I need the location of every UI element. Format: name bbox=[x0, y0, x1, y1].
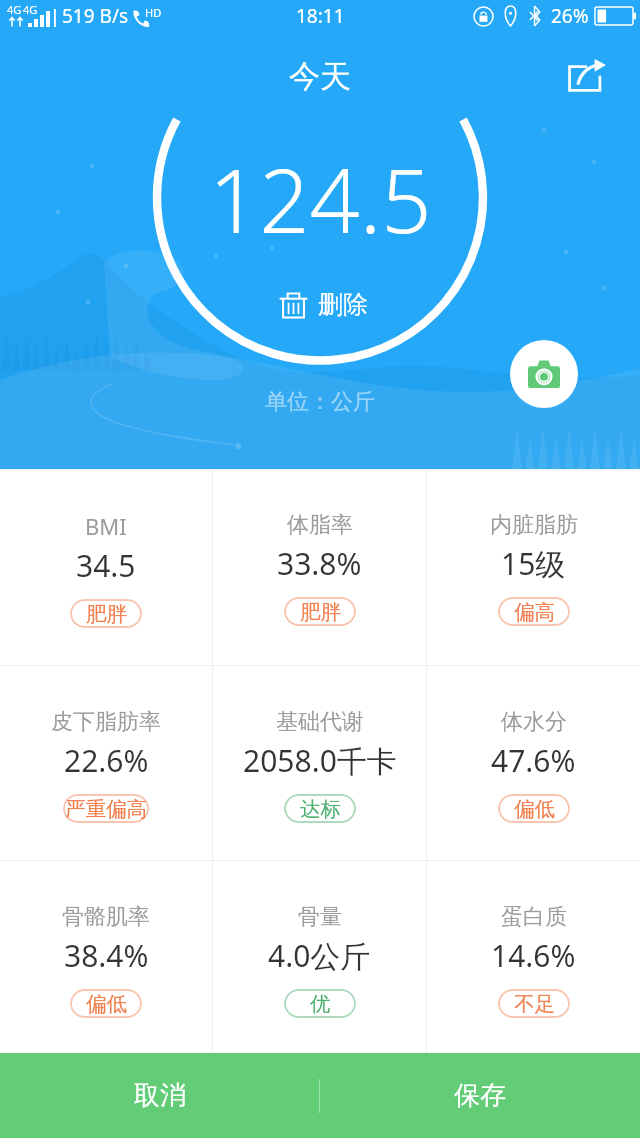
button[interactable]: 蛋白质 bbox=[427, 861, 640, 1053]
staticText: 优 bbox=[310, 991, 331, 1017]
staticText: 47.6% bbox=[491, 740, 576, 781]
staticText: 18:11 bbox=[296, 3, 345, 29]
staticText: 2058.0千卡 bbox=[243, 740, 397, 781]
staticText: 124.5 bbox=[209, 139, 432, 235]
staticText: 26% bbox=[551, 3, 589, 29]
staticText: 单位：公斤 bbox=[265, 388, 375, 416]
staticText: 38.4% bbox=[64, 935, 149, 976]
button[interactable]: 体水分 bbox=[427, 666, 640, 860]
staticText: 15级 bbox=[501, 543, 566, 584]
staticText: 删除 bbox=[318, 289, 368, 320]
staticText: 保存 bbox=[454, 1079, 506, 1112]
button[interactable]: 体脂率 bbox=[213, 469, 426, 665]
staticText: 肥胖 bbox=[86, 601, 127, 627]
staticText: 蛋白质 bbox=[501, 903, 567, 931]
staticText: BMI bbox=[85, 511, 127, 541]
button[interactable]: 取消 bbox=[0, 1053, 319, 1138]
staticText: 偏高 bbox=[514, 599, 555, 625]
button[interactable]: Take photo bbox=[510, 340, 578, 408]
staticText: 达标 bbox=[300, 796, 341, 822]
staticText: 今天 bbox=[289, 57, 351, 96]
staticText: 肥胖 bbox=[300, 599, 341, 625]
staticText: 骨量 bbox=[298, 903, 342, 931]
staticText: 519 B/s bbox=[62, 3, 129, 29]
staticText: 4.0公斤 bbox=[268, 935, 371, 976]
staticText: HD bbox=[145, 5, 162, 20]
button[interactable]: Share bbox=[558, 46, 616, 104]
staticText: 不足 bbox=[514, 991, 555, 1017]
staticText: 34.5 bbox=[76, 545, 136, 586]
button[interactable]: 基础代谢 bbox=[213, 666, 426, 860]
staticText: 严重偏高 bbox=[65, 796, 147, 822]
staticText: 偏低 bbox=[86, 991, 127, 1017]
staticText: 内脏脂肪 bbox=[490, 511, 578, 539]
button[interactable]: 内脏脂肪 bbox=[427, 469, 640, 665]
staticText: 取消 bbox=[134, 1079, 186, 1112]
staticText: 骨骼肌率 bbox=[62, 903, 150, 931]
staticText: 4G bbox=[7, 2, 22, 17]
staticText: 体脂率 bbox=[287, 511, 353, 539]
staticText: 22.6% bbox=[64, 740, 149, 781]
staticText: 33.8% bbox=[277, 543, 362, 584]
button[interactable]: 骨量 bbox=[213, 861, 426, 1053]
staticText: 皮下脂肪率 bbox=[51, 708, 161, 736]
button[interactable]: 皮下脂肪率 bbox=[0, 666, 212, 860]
staticText: 体水分 bbox=[501, 708, 567, 736]
button[interactable]: 删除 bbox=[271, 285, 376, 324]
staticText: 4G bbox=[23, 2, 38, 17]
button[interactable]: BMI bbox=[0, 469, 212, 665]
staticText: 14.6% bbox=[491, 935, 576, 976]
staticText: 基础代谢 bbox=[276, 708, 364, 736]
staticText: 偏低 bbox=[514, 796, 555, 822]
button[interactable]: 骨骼肌率 bbox=[0, 861, 212, 1053]
button[interactable]: 保存 bbox=[320, 1053, 640, 1138]
